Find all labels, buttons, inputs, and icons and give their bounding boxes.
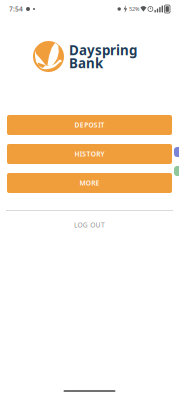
button[interactable]: Assistant (174, 147, 179, 157)
button[interactable]: DEPOSIT (7, 115, 172, 135)
staticText: HISTORY (74, 150, 105, 158)
button[interactable]: MORE (7, 173, 172, 193)
button[interactable]: HISTORY (7, 144, 172, 164)
staticText: Bank (69, 54, 103, 72)
staticText: 52% (129, 5, 139, 13)
staticText: DEPOSIT (74, 121, 105, 129)
staticText: Dayspring (69, 41, 137, 59)
button[interactable]: Support (174, 166, 179, 176)
staticText: 7:54 (9, 5, 23, 13)
staticText: MORE (79, 179, 99, 187)
staticText: LOG OUT (74, 221, 105, 229)
button[interactable]: LOG OUT (0, 220, 179, 230)
